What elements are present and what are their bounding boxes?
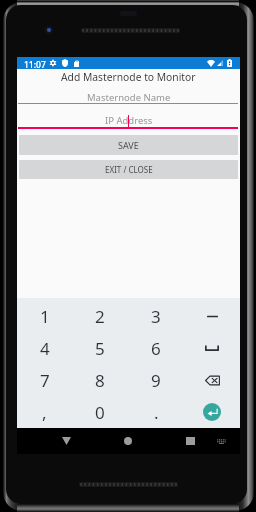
staticText: 1 — [40, 305, 50, 328]
button[interactable]: Space — [184, 332, 240, 364]
button[interactable]: 4 — [17, 332, 72, 364]
staticText: , — [42, 401, 47, 424]
button[interactable]: Hide keyboard — [54, 429, 78, 453]
button[interactable]: Enter — [184, 396, 240, 428]
button[interactable]: SAVE — [19, 135, 238, 155]
button[interactable]: 8 — [72, 364, 128, 396]
button[interactable]: Backspace — [184, 364, 240, 396]
staticText: . — [154, 401, 159, 424]
staticText: Add Masternode to Monitor — [61, 70, 196, 84]
button[interactable]: , — [17, 396, 72, 428]
staticText: 3 — [151, 305, 161, 328]
staticText: 9 — [151, 369, 161, 392]
staticText: 2 — [95, 305, 105, 328]
button[interactable]: Add Masternode to Monitor — [17, 70, 240, 84]
staticText: 5 — [95, 337, 105, 360]
staticText: SAVE — [118, 139, 139, 151]
staticText: EXIT / CLOSE — [105, 164, 153, 175]
button[interactable]: 1 — [17, 301, 72, 332]
staticText: 4 — [40, 337, 50, 360]
button[interactable]: Home — [116, 429, 140, 453]
staticText: 6 — [151, 337, 161, 360]
button[interactable]: 6 — [128, 332, 184, 364]
button[interactable]: 7 — [17, 364, 72, 396]
button[interactable]: 3 — [128, 301, 184, 332]
button[interactable]: 5 — [72, 332, 128, 364]
staticText: IP Address — [105, 114, 153, 127]
staticText: 0 — [95, 401, 105, 424]
button[interactable]: 2 — [72, 301, 128, 332]
staticText: 7 — [40, 369, 50, 392]
staticText: 8 — [95, 369, 105, 392]
button[interactable]: 0 — [72, 396, 128, 428]
button[interactable]: Switch keyboard — [212, 429, 230, 453]
staticText: Masternode Name — [87, 91, 171, 104]
button[interactable]: . — [128, 396, 184, 428]
button[interactable]: EXIT / CLOSE — [19, 160, 238, 179]
button[interactable]: Masternode Name — [17, 90, 240, 104]
button[interactable]: IP Address — [17, 113, 240, 127]
button[interactable]: 9 — [128, 364, 184, 396]
button[interactable]: Recents — [178, 429, 202, 453]
button[interactable]: Minus — [184, 301, 240, 332]
staticText: 11:07 — [24, 59, 46, 71]
